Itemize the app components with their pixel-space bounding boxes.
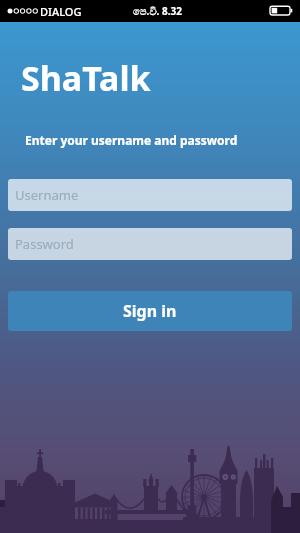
- button[interactable]: Username: [8, 179, 292, 211]
- staticText: Username: [15, 186, 79, 204]
- staticText: DIALOG: [40, 4, 82, 19]
- staticText: Sign in: [123, 300, 177, 322]
- staticText: ShaTalk: [21, 55, 151, 101]
- button[interactable]: Password: [8, 228, 292, 260]
- staticText: Password: [15, 235, 74, 253]
- staticText: පෙ.වි. 8.32: [133, 4, 182, 18]
- button[interactable]: Sign in: [8, 291, 292, 331]
- staticText: Enter your username and password: [25, 132, 238, 148]
